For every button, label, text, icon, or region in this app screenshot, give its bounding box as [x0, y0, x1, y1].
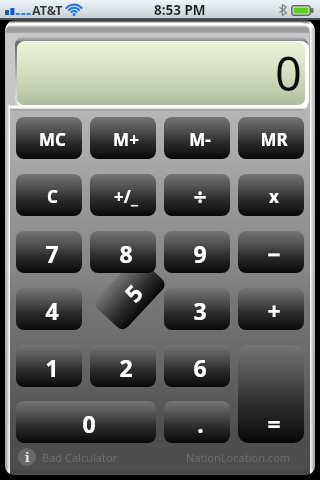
- staticText: 5: [117, 277, 149, 308]
- staticText: =: [267, 408, 281, 439]
- button[interactable]: 0: [16, 401, 156, 443]
- staticText: 8:53 PM: [154, 1, 206, 19]
- staticText: M-: [189, 128, 211, 151]
- staticText: 7: [45, 238, 59, 269]
- staticText: MC: [39, 128, 66, 151]
- staticText: NationLocation.com: [186, 450, 291, 465]
- staticText: +: [267, 295, 281, 326]
- staticText: C: [47, 185, 58, 208]
- button[interactable]: 9: [164, 231, 230, 273]
- button[interactable]: MR: [238, 117, 304, 159]
- staticText: 0: [275, 42, 302, 104]
- button[interactable]: =: [238, 345, 304, 443]
- staticText: 9: [193, 238, 207, 269]
- button[interactable]: MC: [16, 117, 82, 159]
- button[interactable]: M-: [164, 117, 230, 159]
- button[interactable]: x: [238, 174, 304, 216]
- button[interactable]: 7: [16, 231, 82, 273]
- button[interactable]: 5: [92, 255, 168, 332]
- staticText: 6: [193, 352, 207, 383]
- staticText: +/_: [114, 185, 138, 208]
- staticText: .: [197, 408, 204, 439]
- button[interactable]: i: [18, 448, 36, 466]
- button[interactable]: 6: [164, 345, 230, 387]
- button[interactable]: +: [238, 288, 304, 330]
- staticText: MR: [260, 128, 288, 151]
- button[interactable]: C: [16, 174, 82, 216]
- staticText: 3: [193, 295, 207, 326]
- staticText: −: [267, 238, 281, 269]
- staticText: i: [25, 448, 30, 466]
- staticText: AT&T: [32, 2, 63, 19]
- button[interactable]: M+: [90, 117, 156, 159]
- staticText: 8: [119, 238, 133, 269]
- button[interactable]: 4: [16, 288, 82, 330]
- button[interactable]: +/_: [90, 174, 156, 216]
- button[interactable]: .: [164, 401, 230, 443]
- staticText: 0: [82, 408, 96, 439]
- button[interactable]: 3: [164, 288, 230, 330]
- button[interactable]: 1: [16, 345, 82, 387]
- staticText: ÷: [193, 181, 207, 212]
- button[interactable]: ÷: [164, 174, 230, 216]
- staticText: 2: [119, 352, 133, 383]
- staticText: Bad Calculator: [42, 450, 118, 465]
- button[interactable]: 8: [90, 231, 156, 273]
- staticText: x: [269, 185, 279, 208]
- staticText: 1: [45, 352, 59, 383]
- button[interactable]: −: [238, 231, 304, 273]
- button[interactable]: 2: [90, 345, 156, 387]
- staticText: M+: [113, 128, 139, 151]
- staticText: 4: [45, 295, 59, 326]
